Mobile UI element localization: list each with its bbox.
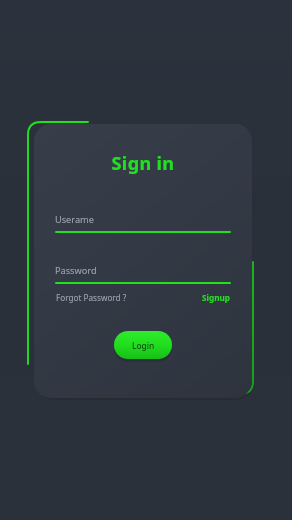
- staticText: Forgot Password ?: [56, 292, 127, 303]
- button[interactable]: Userame: [55, 213, 231, 233]
- button[interactable]: Login: [114, 331, 172, 359]
- button[interactable]: Signup: [201, 290, 231, 305]
- staticText: Userame: [55, 213, 94, 226]
- staticText: Password: [55, 264, 97, 277]
- button[interactable]: Forgot Password ?: [55, 290, 128, 305]
- button[interactable]: Password: [55, 264, 231, 284]
- staticText: Sign in: [55, 151, 231, 176]
- staticText: Signup: [202, 292, 230, 303]
- staticText: Login: [132, 340, 155, 351]
